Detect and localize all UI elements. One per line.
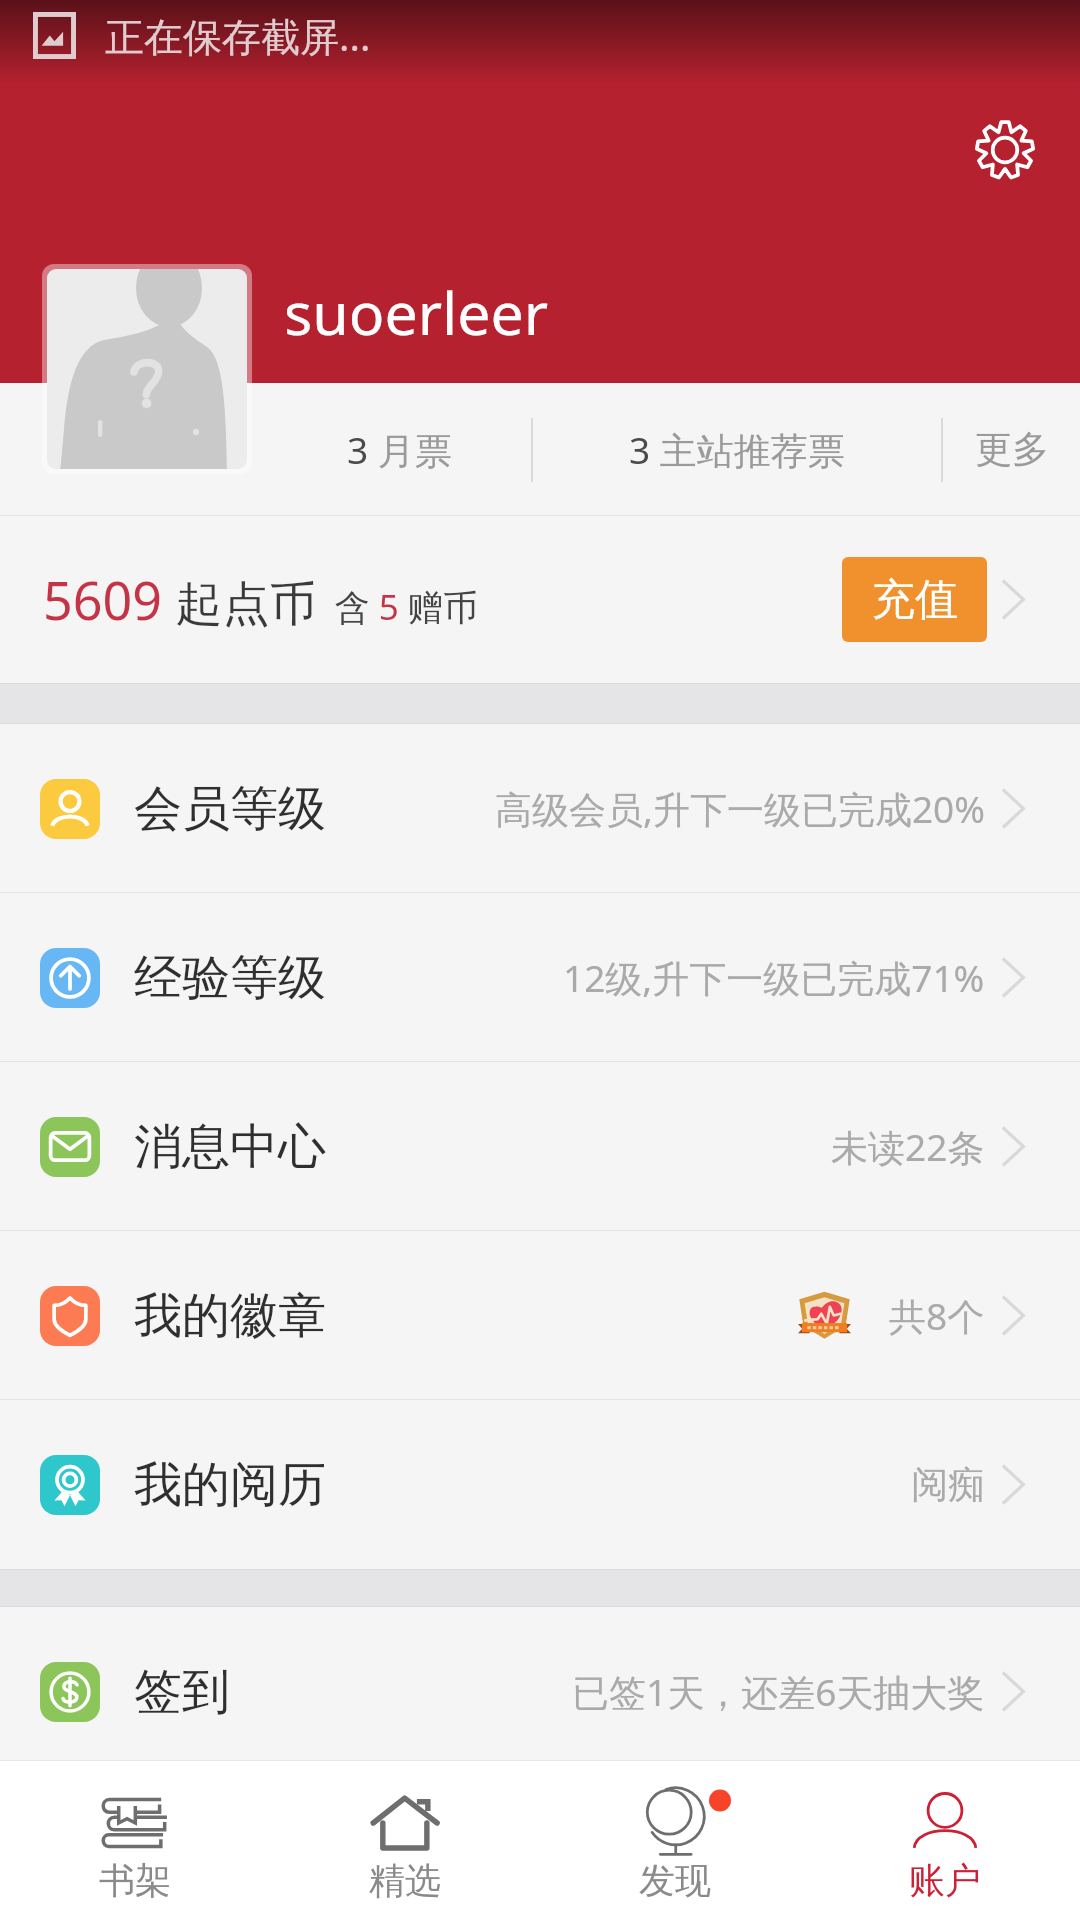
staticText: 未读22条 xyxy=(831,1121,985,1172)
staticText: 已签1天，还差6天抽大奖 xyxy=(572,1666,985,1717)
button[interactable]: 签到 xyxy=(0,1607,1080,1776)
staticText: 经验等级 xyxy=(134,948,326,1008)
staticText: 3 主站推荐票 xyxy=(629,424,845,475)
button[interactable]: 账户 xyxy=(810,1761,1080,1920)
button[interactable]: 充值 xyxy=(842,557,987,642)
staticText: 高级会员,升下一级已完成20% xyxy=(495,783,985,834)
staticText: 我的徽章 xyxy=(134,1286,326,1346)
button[interactable]: 发现 xyxy=(540,1761,810,1920)
button[interactable]: 会员等级 xyxy=(0,724,1080,893)
staticText: 正在保存截屏... xyxy=(105,9,371,62)
staticText: 精选 xyxy=(369,1858,441,1903)
staticText: 发现 xyxy=(639,1858,711,1903)
button[interactable]: 头像 xyxy=(42,264,252,474)
staticText: 共8个 xyxy=(889,1290,985,1341)
staticText: 消息中心 xyxy=(134,1117,326,1177)
staticText: 书架 xyxy=(99,1858,171,1903)
button[interactable]: 更多 xyxy=(943,383,1080,516)
staticText: suoerleer xyxy=(284,272,549,352)
staticText: 3 月票 xyxy=(347,424,452,475)
button[interactable]: 我的徽章 xyxy=(0,1231,1080,1400)
button[interactable]: 经验等级 xyxy=(0,893,1080,1062)
staticText: 我的阅历 xyxy=(134,1455,326,1515)
button[interactable]: 书架 xyxy=(0,1761,270,1920)
staticText: 12级,升下一级已完成71% xyxy=(563,952,985,1003)
staticText: 账户 xyxy=(909,1858,981,1903)
button[interactable]: 我的阅历 xyxy=(0,1400,1080,1569)
button[interactable]: 设置 xyxy=(960,105,1050,195)
staticText: 签到 xyxy=(134,1662,230,1722)
button[interactable]: 消息中心 xyxy=(0,1062,1080,1231)
button[interactable]: 5609 起点币 含 5 赠币 xyxy=(0,516,1080,683)
staticText: 充值 xyxy=(872,573,958,627)
button[interactable]: 精选 xyxy=(270,1761,540,1920)
staticText: 更多 xyxy=(975,426,1049,473)
staticText: 阅痴 xyxy=(911,1461,985,1508)
staticText: 会员等级 xyxy=(134,779,326,839)
button[interactable]: 3 主站推荐票 xyxy=(533,383,941,516)
staticText: 5609 起点币 含 5 赠币 xyxy=(43,564,478,635)
button[interactable]: 3 月票 xyxy=(268,383,531,516)
